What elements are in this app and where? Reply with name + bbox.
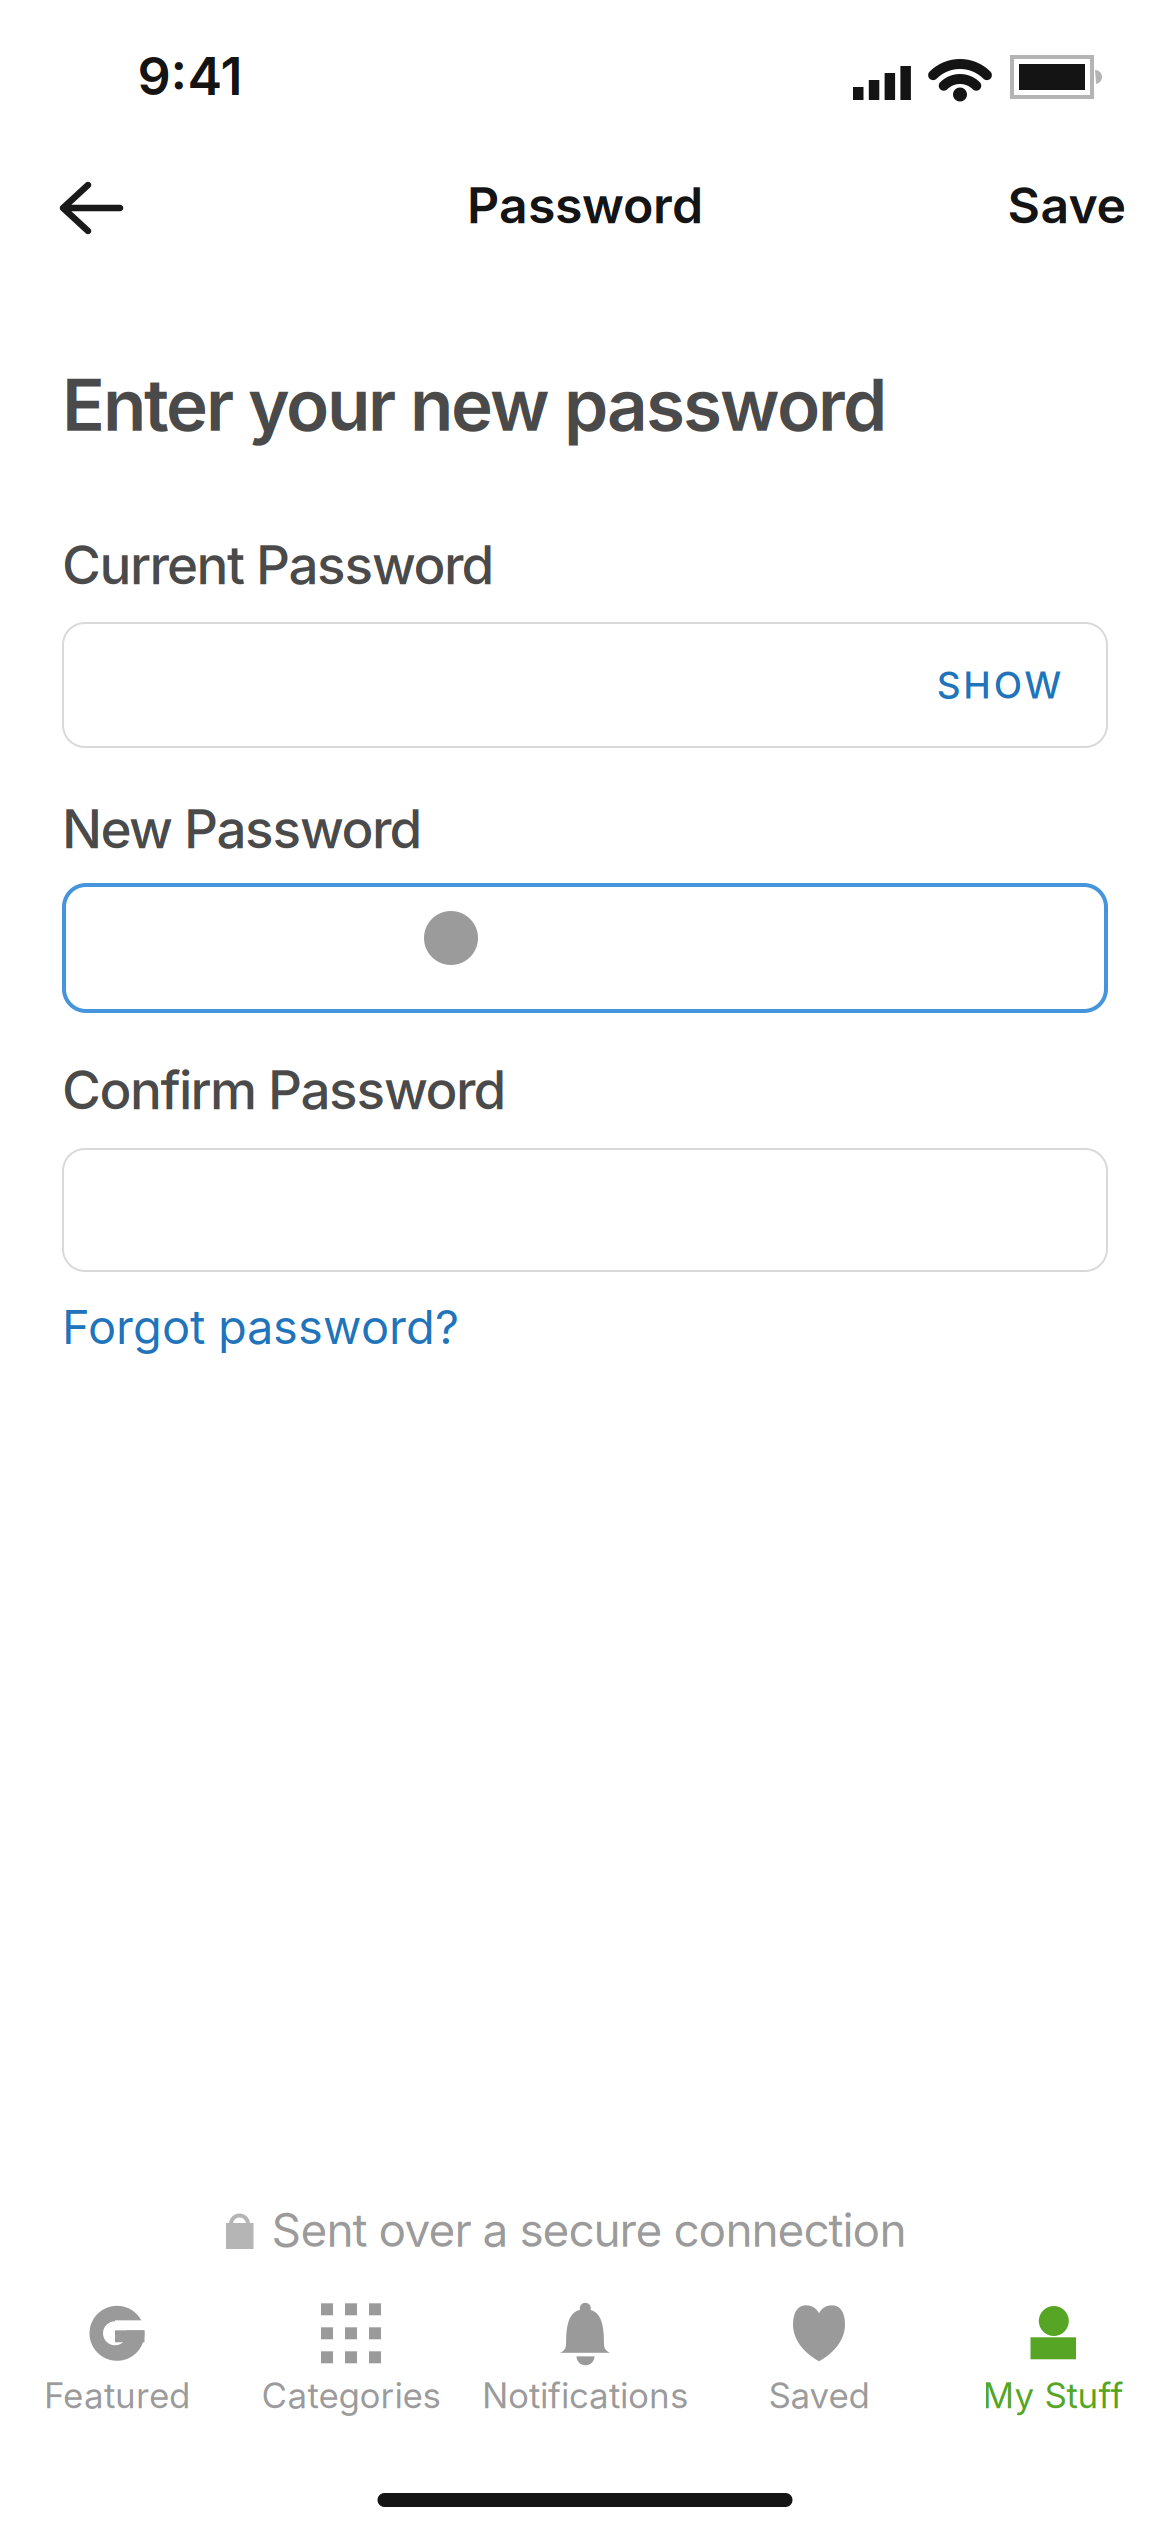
staticText: 9:41 xyxy=(137,45,242,107)
button[interactable]: Back xyxy=(40,160,142,256)
staticText: Categories xyxy=(261,2375,440,2416)
staticText: New Password xyxy=(62,798,422,860)
staticText: Notifications xyxy=(482,2375,688,2416)
staticText: Sent over a secure connection xyxy=(271,2203,906,2257)
staticText: SHOW xyxy=(937,663,1061,707)
staticText: Featured xyxy=(44,2375,190,2416)
staticText: Save xyxy=(1007,175,1126,234)
button[interactable]: Notifications xyxy=(468,2301,702,2416)
staticText: Current Password xyxy=(62,534,494,596)
button[interactable]: Featured xyxy=(0,2301,234,2416)
button[interactable]: Save xyxy=(1007,161,1126,248)
staticText: Saved xyxy=(768,2375,869,2416)
staticText: My Stuff xyxy=(982,2375,1123,2416)
button[interactable]: Forgot password? xyxy=(62,1287,459,1367)
button[interactable]: Categories xyxy=(234,2301,468,2416)
button[interactable]: My Stuff xyxy=(936,2301,1170,2416)
button[interactable]: Saved xyxy=(702,2301,936,2416)
staticText: Forgot password? xyxy=(62,1299,459,1355)
staticText: Password xyxy=(467,175,703,234)
button[interactable]: SHOW xyxy=(919,645,1079,725)
staticText: Enter your new password xyxy=(62,363,887,447)
staticText: Confirm Password xyxy=(62,1059,506,1121)
